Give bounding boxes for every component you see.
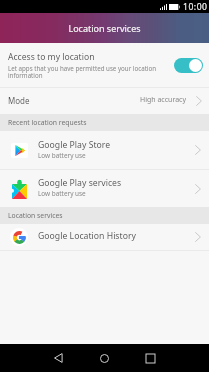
button[interactable]: Google Play services	[0, 170, 209, 207]
staticText: Low battery use	[38, 189, 86, 198]
staticText: Google Play services	[38, 177, 122, 189]
button[interactable]: Access to my location	[0, 43, 209, 87]
button[interactable]: Recent apps	[127, 344, 173, 372]
button[interactable]: Google Play Store	[0, 131, 209, 169]
button[interactable]: Toggle access to my location	[174, 58, 203, 73]
button[interactable]: Back	[35, 344, 81, 372]
staticText: High accuracy	[140, 95, 187, 105]
staticText: Location services	[68, 22, 141, 34]
staticText: Location services	[8, 211, 63, 220]
staticText: 10:00	[183, 1, 208, 13]
button[interactable]: Google Location History	[0, 224, 209, 250]
staticText: Let apps that you have permitted use you…	[8, 64, 171, 79]
staticText: Low battery use	[38, 151, 86, 160]
button[interactable]: Mode	[0, 88, 209, 114]
staticText: Recent location requests	[8, 118, 87, 127]
staticText: Mode	[8, 95, 30, 106]
button[interactable]: Home	[81, 344, 127, 372]
staticText: Google Location History	[38, 230, 136, 242]
staticText: Access to my location	[8, 51, 95, 63]
staticText: Google Play Store	[38, 139, 111, 151]
